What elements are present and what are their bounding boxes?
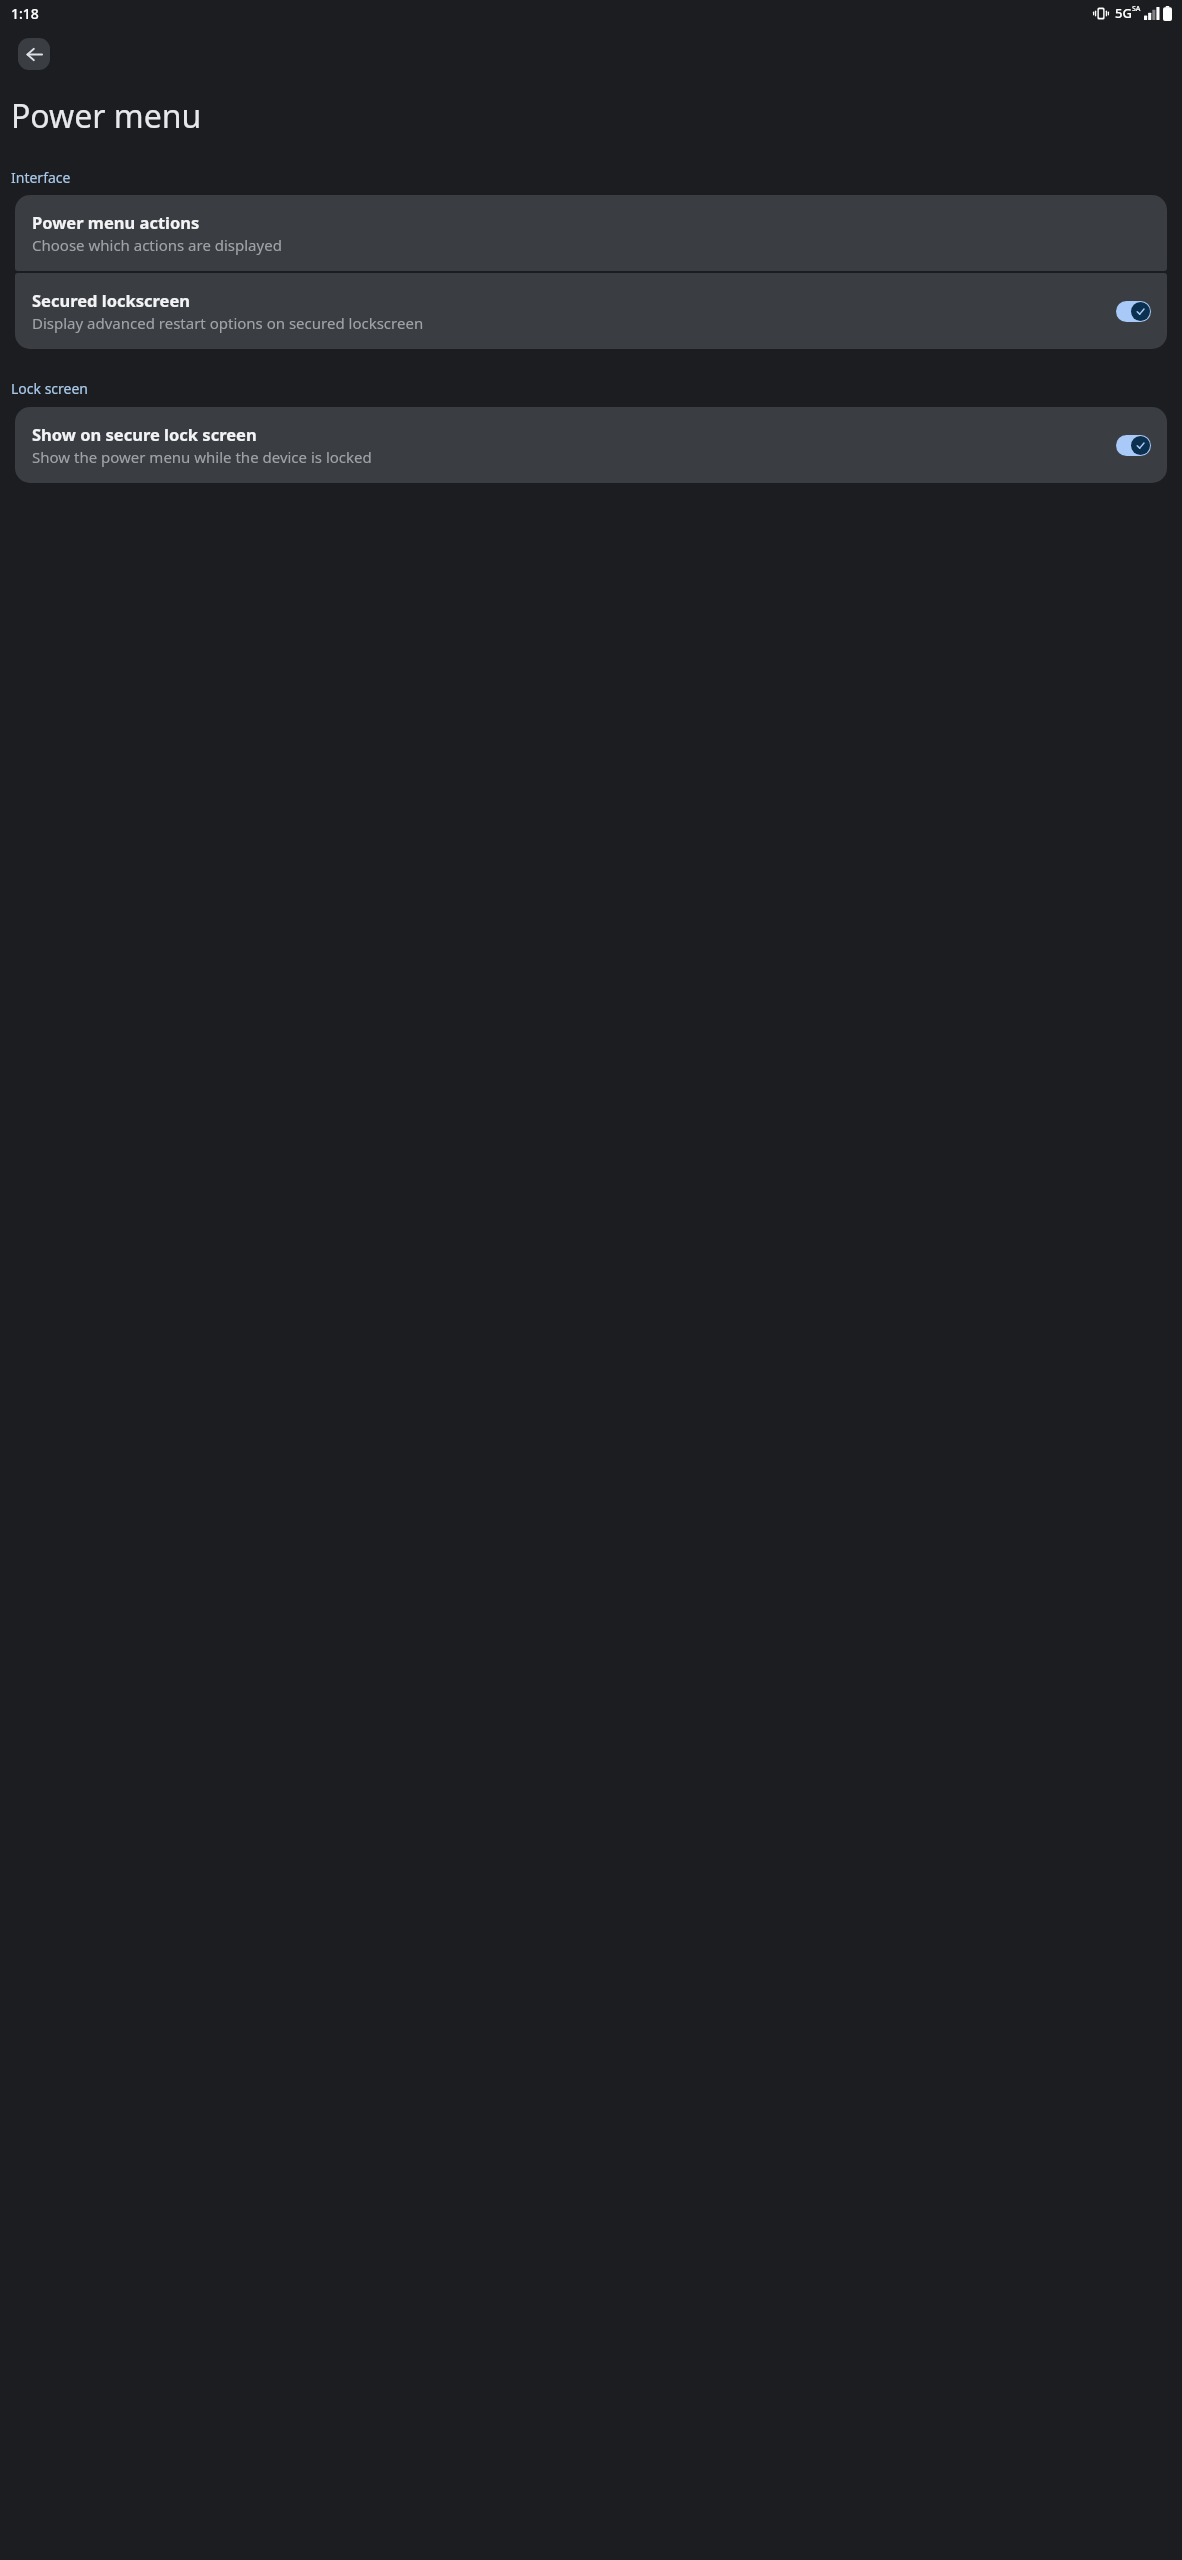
button[interactable]: Show on secure lock screen bbox=[15, 407, 1167, 483]
staticText: Show the power menu while the device is … bbox=[32, 447, 372, 467]
staticText: Display advanced restart options on secu… bbox=[32, 313, 424, 333]
staticText: Lock screen bbox=[11, 379, 89, 398]
staticText: Show on secure lock screen bbox=[32, 423, 257, 445]
button[interactable]: Toggle setting, on bbox=[1116, 301, 1151, 322]
staticText: Interface bbox=[11, 168, 71, 187]
button[interactable]: Back bbox=[18, 38, 50, 70]
staticText: Power menu bbox=[11, 94, 202, 138]
staticText: Choose which actions are displayed bbox=[32, 235, 282, 255]
staticText: Power menu actions bbox=[32, 211, 200, 233]
staticText: Secured lockscreen bbox=[32, 289, 191, 311]
button[interactable]: Secured lockscreen bbox=[15, 273, 1167, 349]
staticText: 1:18 bbox=[11, 4, 39, 23]
staticText: SA bbox=[1132, 4, 1141, 14]
button[interactable]: Power menu actions bbox=[15, 195, 1167, 271]
button[interactable]: Toggle setting, on bbox=[1116, 435, 1151, 456]
staticText: 5G bbox=[1115, 4, 1132, 22]
